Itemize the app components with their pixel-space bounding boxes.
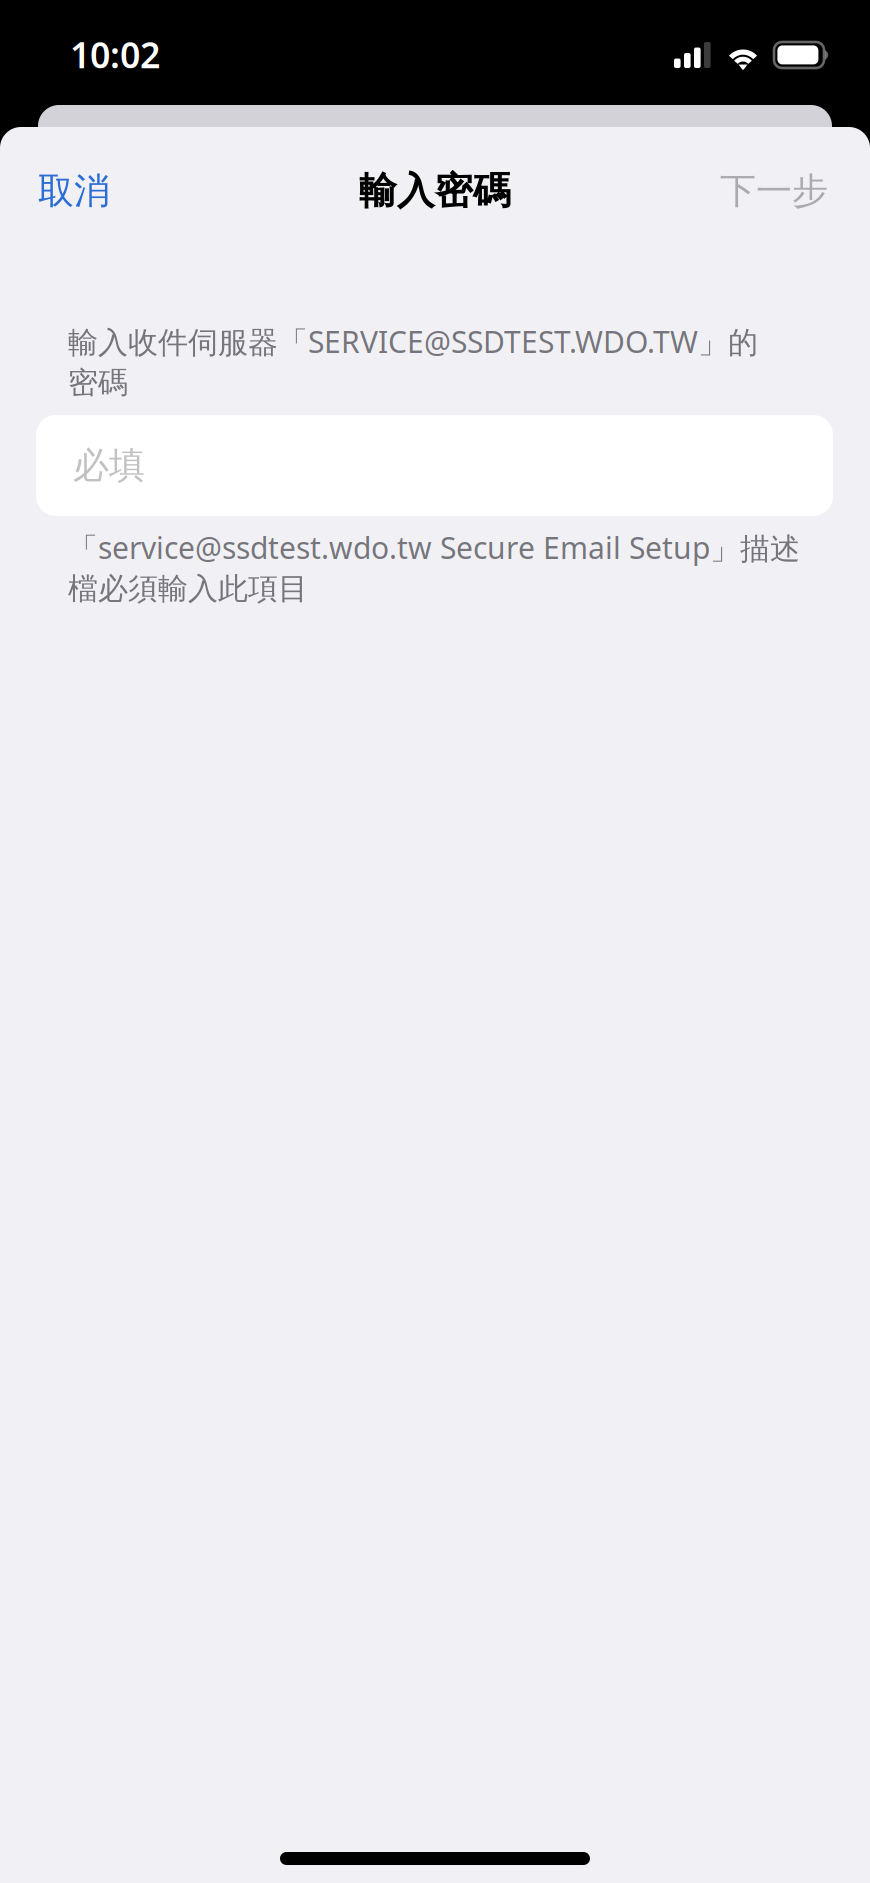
staticText: 取消 (38, 168, 110, 214)
button[interactable]: 取消 (38, 159, 110, 223)
staticText: 下一步 (720, 168, 828, 214)
staticText: 10:02 (70, 30, 160, 79)
button[interactable]: 密碼 (36, 415, 833, 516)
staticText: 必填 (73, 443, 145, 488)
button[interactable]: 下一步 (720, 159, 828, 223)
staticText: 「service@ssdtest.wdo.tw Secure Email Set… (68, 527, 800, 608)
staticText: 輸入密碼 (359, 167, 511, 215)
staticText: 輸入收件伺服器「SERVICE@SSDTEST.WDO.TW」的 密碼 (68, 321, 758, 402)
